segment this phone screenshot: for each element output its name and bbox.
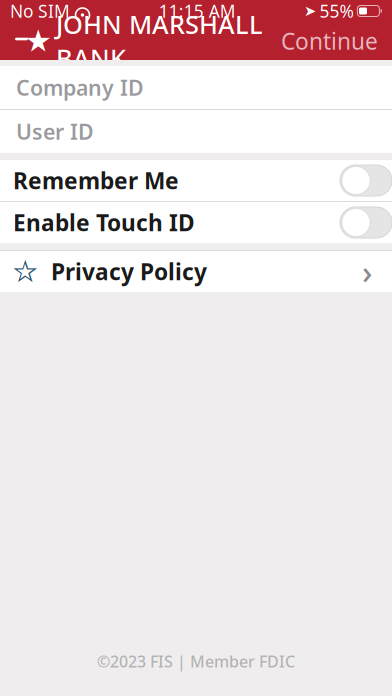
- button[interactable]: Continue: [273, 20, 386, 62]
- staticText: User ID: [16, 117, 94, 146]
- staticText: Remember Me: [13, 165, 179, 195]
- staticText: ➤: [304, 3, 316, 19]
- staticText: ★: [15, 259, 34, 284]
- staticText: ©2023 FIS | Member FDIC: [97, 651, 295, 672]
- staticText: 11:15 AM: [159, 0, 236, 22]
- staticText: 55%: [319, 0, 353, 22]
- staticText: Privacy Policy: [51, 256, 207, 286]
- staticText: Continue: [281, 26, 378, 56]
- staticText: Enable Touch ID: [13, 207, 195, 237]
- staticText: No SIM: [10, 0, 70, 22]
- button[interactable]: Company ID: [0, 66, 392, 109]
- staticText: ★: [11, 254, 38, 289]
- button[interactable]: Remember Me: [0, 160, 392, 201]
- button[interactable]: Enable Touch ID: [0, 202, 392, 243]
- button[interactable]: ★: [0, 251, 392, 292]
- staticText: JOHN MARSHALL BANK: [56, 7, 263, 75]
- button[interactable]: User ID: [0, 110, 392, 153]
- staticText: Company ID: [16, 73, 144, 102]
- staticText: ›: [362, 250, 372, 293]
- staticText: ★: [24, 24, 51, 58]
